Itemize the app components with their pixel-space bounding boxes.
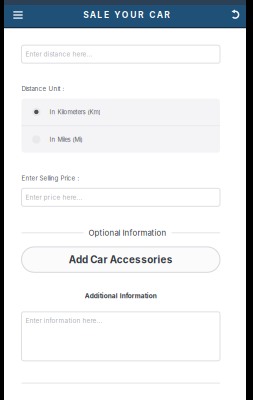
button[interactable]: Add Car Accessories bbox=[21, 247, 220, 272]
button[interactable]: In Kilometers (Km) bbox=[21, 99, 220, 125]
button[interactable]: Menu bbox=[7, 4, 28, 25]
staticText: Enter distance here... bbox=[25, 50, 92, 58]
staticText: In Miles (Mi) bbox=[49, 136, 82, 143]
staticText: Add Car Accessories bbox=[69, 254, 173, 265]
button[interactable]: Back bbox=[225, 4, 246, 25]
staticText: Optional Information bbox=[88, 228, 166, 237]
staticText: Enter information here... bbox=[25, 317, 102, 324]
staticText: Distance Unit : bbox=[21, 85, 64, 92]
staticText: SALE YOUR CAR bbox=[83, 10, 170, 20]
staticText: Enter Selling Price : bbox=[21, 175, 79, 182]
staticText: Enter price here... bbox=[25, 193, 82, 201]
button[interactable]: In Miles (Mi) bbox=[21, 126, 220, 153]
staticText: In Kilometers (Km) bbox=[49, 108, 100, 116]
staticText: Additional Information bbox=[85, 292, 157, 300]
